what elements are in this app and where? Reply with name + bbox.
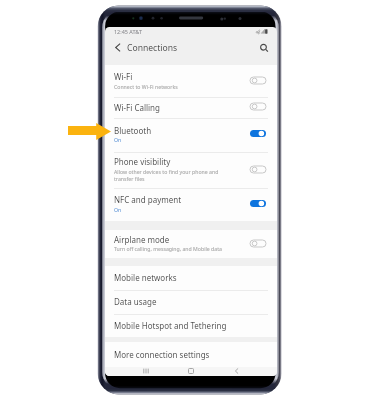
staticText: Mobile networks xyxy=(114,272,177,283)
button[interactable]: Home xyxy=(184,364,198,376)
button[interactable]: More connection settings xyxy=(105,342,277,367)
button[interactable]: Connections xyxy=(127,41,179,54)
staticText: Mobile Hotspot and Tethering xyxy=(114,320,227,331)
button[interactable]: Wi-Fi Calling xyxy=(105,97,277,118)
staticText: Allow other devices to find your phone a… xyxy=(114,168,219,183)
button[interactable]: Wi-Fi switch xyxy=(250,77,266,84)
staticText: Wi-Fi xyxy=(114,71,133,82)
button[interactable]: Wi-Fi Calling switch xyxy=(250,103,266,110)
button[interactable]: NFC and payment switch xyxy=(250,200,266,207)
staticText: 12:45 AT&T xyxy=(114,28,142,35)
button[interactable]: Recents xyxy=(139,364,153,376)
staticText: NFC and payment xyxy=(114,194,182,205)
staticText: On xyxy=(114,136,122,143)
staticText: On xyxy=(114,206,122,213)
staticText: More connection settings xyxy=(114,349,210,360)
button[interactable]: Mobile networks xyxy=(105,266,277,290)
button[interactable]: Phone visibility switch xyxy=(250,166,266,173)
staticText: Connect to Wi-Fi networks xyxy=(114,83,178,90)
button[interactable]: Phone visibility xyxy=(105,152,277,188)
button[interactable]: Bluetooth switch xyxy=(250,130,266,137)
button[interactable]: Mobile Hotspot and Tethering xyxy=(105,314,277,337)
button[interactable]: Wi-Fi xyxy=(105,65,277,97)
staticText: Bluetooth xyxy=(114,125,152,136)
button[interactable]: NFC and payment xyxy=(105,188,277,220)
button[interactable]: Bluetooth xyxy=(105,118,277,152)
staticText: Turn off calling, messaging, and Mobile … xyxy=(114,245,222,252)
staticText: Phone visibility xyxy=(114,156,171,167)
staticText: Wi-Fi Calling xyxy=(114,102,160,113)
button[interactable]: Back xyxy=(113,41,123,54)
staticText: Connections xyxy=(127,42,178,54)
button[interactable]: Back xyxy=(229,364,243,376)
button[interactable]: Data usage xyxy=(105,290,277,314)
button[interactable]: Airplane mode switch xyxy=(250,240,266,247)
staticText: Airplane mode xyxy=(114,234,170,245)
button[interactable]: Search xyxy=(257,41,270,54)
staticText: Data usage xyxy=(114,296,157,307)
button[interactable]: Airplane mode xyxy=(105,230,277,258)
